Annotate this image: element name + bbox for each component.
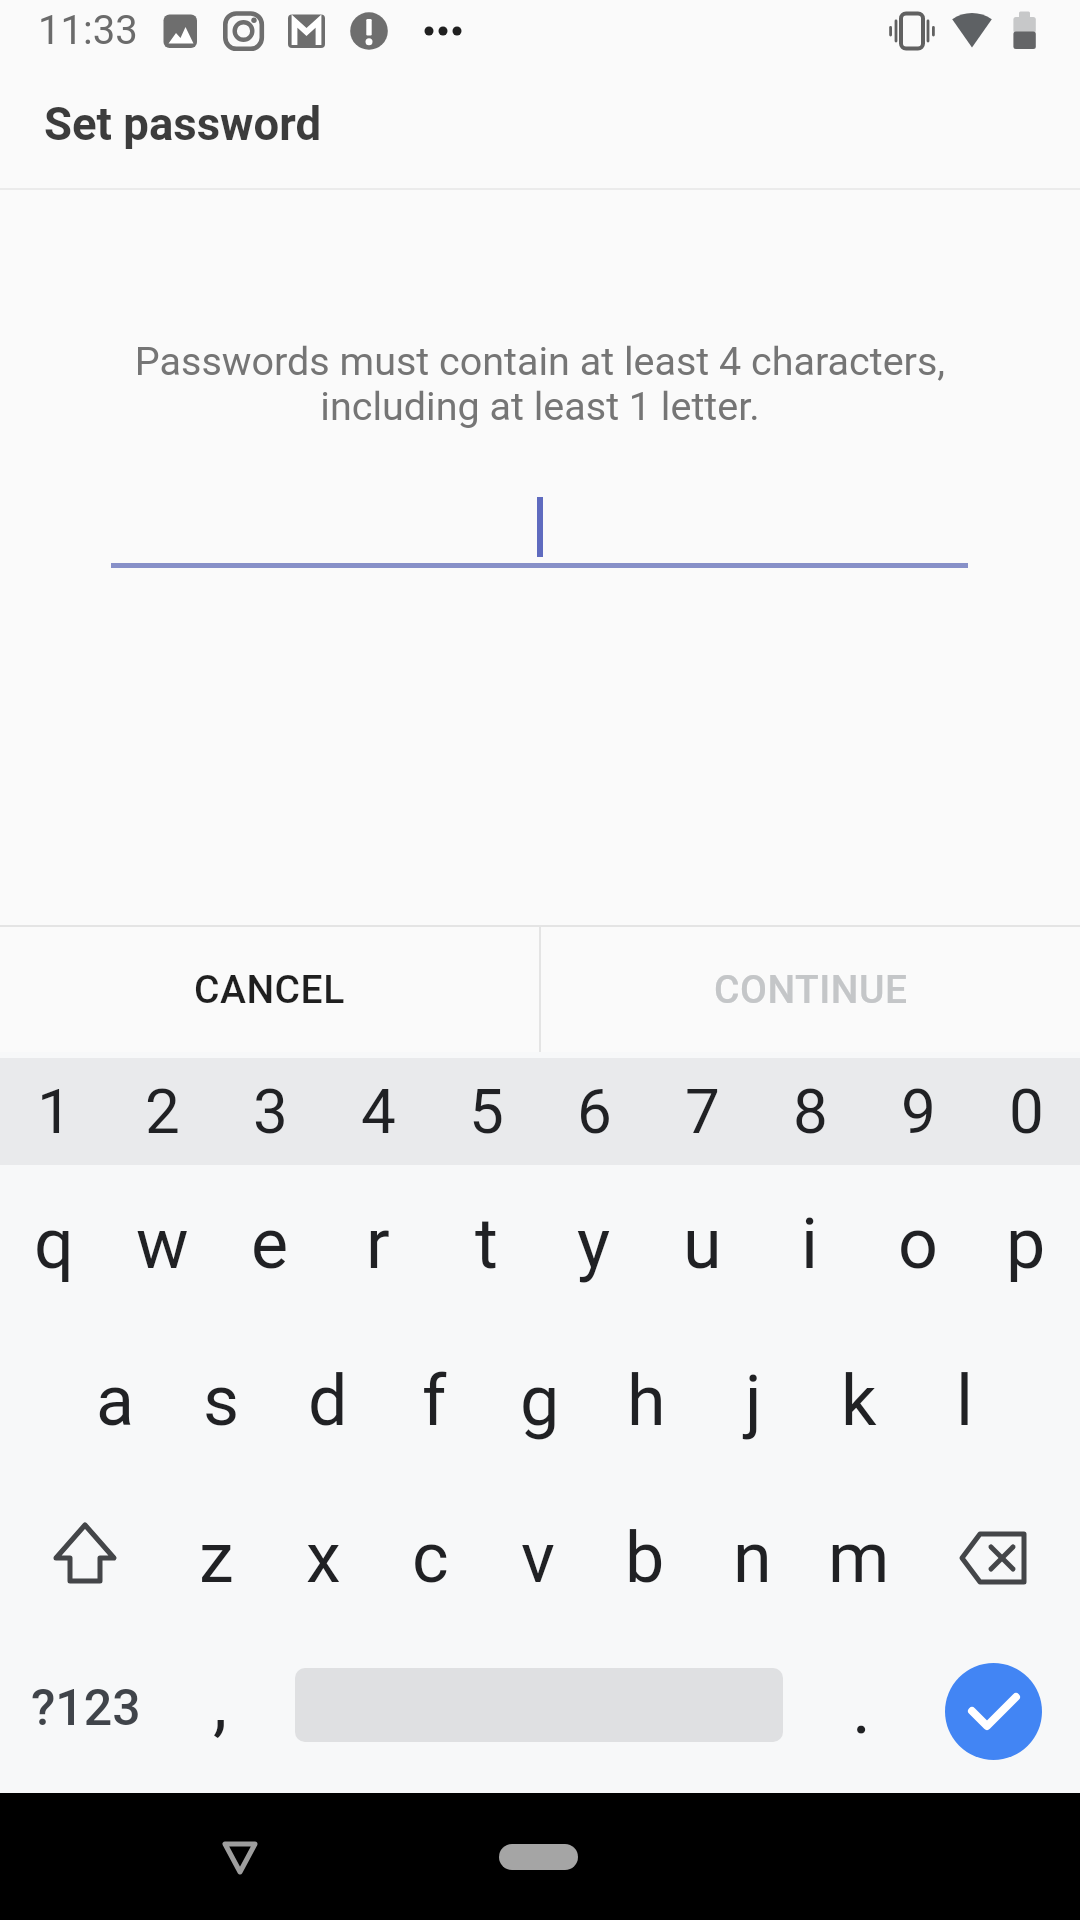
button[interactable]: 6 [540, 1058, 648, 1165]
staticText: q [34, 1203, 74, 1285]
staticText: Passwords must contain at least 4 charac… [0, 338, 1080, 438]
staticText: 6 [577, 1075, 612, 1148]
button[interactable]: 8 [756, 1058, 864, 1165]
staticText: w [136, 1203, 189, 1285]
staticText: x [306, 1517, 341, 1599]
button[interactable]: o [864, 1165, 972, 1322]
button[interactable]: CONTINUE [541, 927, 1080, 1052]
staticText: 4 [361, 1075, 396, 1148]
button[interactable]: y [540, 1165, 648, 1322]
button[interactable]: e [216, 1165, 324, 1322]
staticText: z [199, 1517, 234, 1599]
staticText: 1 [37, 1075, 72, 1148]
button[interactable]: a [61, 1322, 169, 1479]
button[interactable] [931, 1491, 1055, 1615]
staticText: y [577, 1203, 611, 1285]
staticText: 9 [901, 1075, 936, 1148]
button[interactable]: f [380, 1322, 488, 1479]
button[interactable]: 5 [432, 1058, 540, 1165]
staticText: 2 [145, 1075, 180, 1148]
button[interactable]: x [269, 1479, 377, 1636]
button[interactable]: j [699, 1322, 807, 1479]
button[interactable] [499, 1844, 578, 1870]
staticText: n [733, 1517, 772, 1599]
button[interactable]: n [698, 1479, 806, 1636]
button[interactable]: s [167, 1322, 275, 1479]
button[interactable]: 1 [0, 1058, 108, 1165]
staticText: 8 [793, 1075, 828, 1148]
staticText: ?123 [31, 1679, 141, 1738]
button[interactable]: CANCEL [0, 927, 539, 1052]
staticText: 7 [685, 1075, 720, 1148]
staticText: r [366, 1203, 390, 1285]
button[interactable]: 0 [972, 1058, 1080, 1165]
staticText: 11:33 [38, 7, 138, 54]
button[interactable]: z [162, 1479, 270, 1636]
button[interactable]: m [805, 1479, 913, 1636]
button[interactable]: r [324, 1165, 432, 1322]
button[interactable]: 2 [108, 1058, 216, 1165]
staticText: l [956, 1360, 974, 1442]
button[interactable]: ?123 [24, 1636, 148, 1781]
staticText: b [625, 1517, 665, 1599]
button[interactable]: h [592, 1322, 700, 1479]
button[interactable]: i [756, 1165, 864, 1322]
button[interactable]: l [911, 1322, 1019, 1479]
staticText: e [251, 1203, 289, 1285]
button[interactable]: c [376, 1479, 484, 1636]
button[interactable] [23, 1491, 147, 1615]
staticText: p [1006, 1203, 1046, 1285]
staticText: m [828, 1517, 890, 1599]
staticText: d [308, 1360, 348, 1442]
staticText: CONTINUE [714, 967, 908, 1013]
button[interactable]: 3 [216, 1058, 324, 1165]
staticText: v [521, 1517, 555, 1599]
button[interactable]: u [648, 1165, 756, 1322]
staticText: Set password [44, 98, 322, 151]
button[interactable]: w [108, 1165, 216, 1322]
button[interactable]: p [972, 1165, 1080, 1322]
button[interactable]: 4 [324, 1058, 432, 1165]
staticText: 5 [469, 1075, 504, 1148]
staticText: h [627, 1360, 666, 1442]
button[interactable]: k [805, 1322, 913, 1479]
staticText: i [801, 1203, 819, 1285]
staticText: u [683, 1203, 722, 1285]
staticText: t [475, 1203, 498, 1285]
button[interactable]: g [486, 1322, 594, 1479]
button[interactable]: v [484, 1479, 592, 1636]
button[interactable]: 9 [864, 1058, 972, 1165]
staticText: o [898, 1203, 938, 1285]
button[interactable]: . [809, 1635, 913, 1780]
button[interactable]: d [274, 1322, 382, 1479]
staticText: a [96, 1360, 135, 1442]
button[interactable]: , [168, 1630, 272, 1775]
staticText: j [745, 1360, 762, 1442]
staticText: , [213, 1661, 228, 1745]
staticText: 0 [1009, 1075, 1044, 1148]
button[interactable]: b [591, 1479, 699, 1636]
button[interactable] [945, 1663, 1042, 1760]
staticText: c [412, 1517, 449, 1599]
staticText: f [422, 1360, 447, 1442]
button[interactable] [196, 1813, 284, 1901]
staticText: g [520, 1360, 560, 1442]
staticText: . [852, 1666, 871, 1750]
staticText: 3 [253, 1075, 288, 1148]
staticText: k [841, 1360, 877, 1442]
button[interactable]: q [0, 1165, 108, 1322]
staticText: CANCEL [194, 967, 345, 1013]
staticText: s [203, 1360, 240, 1442]
button[interactable]: t [432, 1165, 540, 1322]
button[interactable]: 7 [648, 1058, 756, 1165]
